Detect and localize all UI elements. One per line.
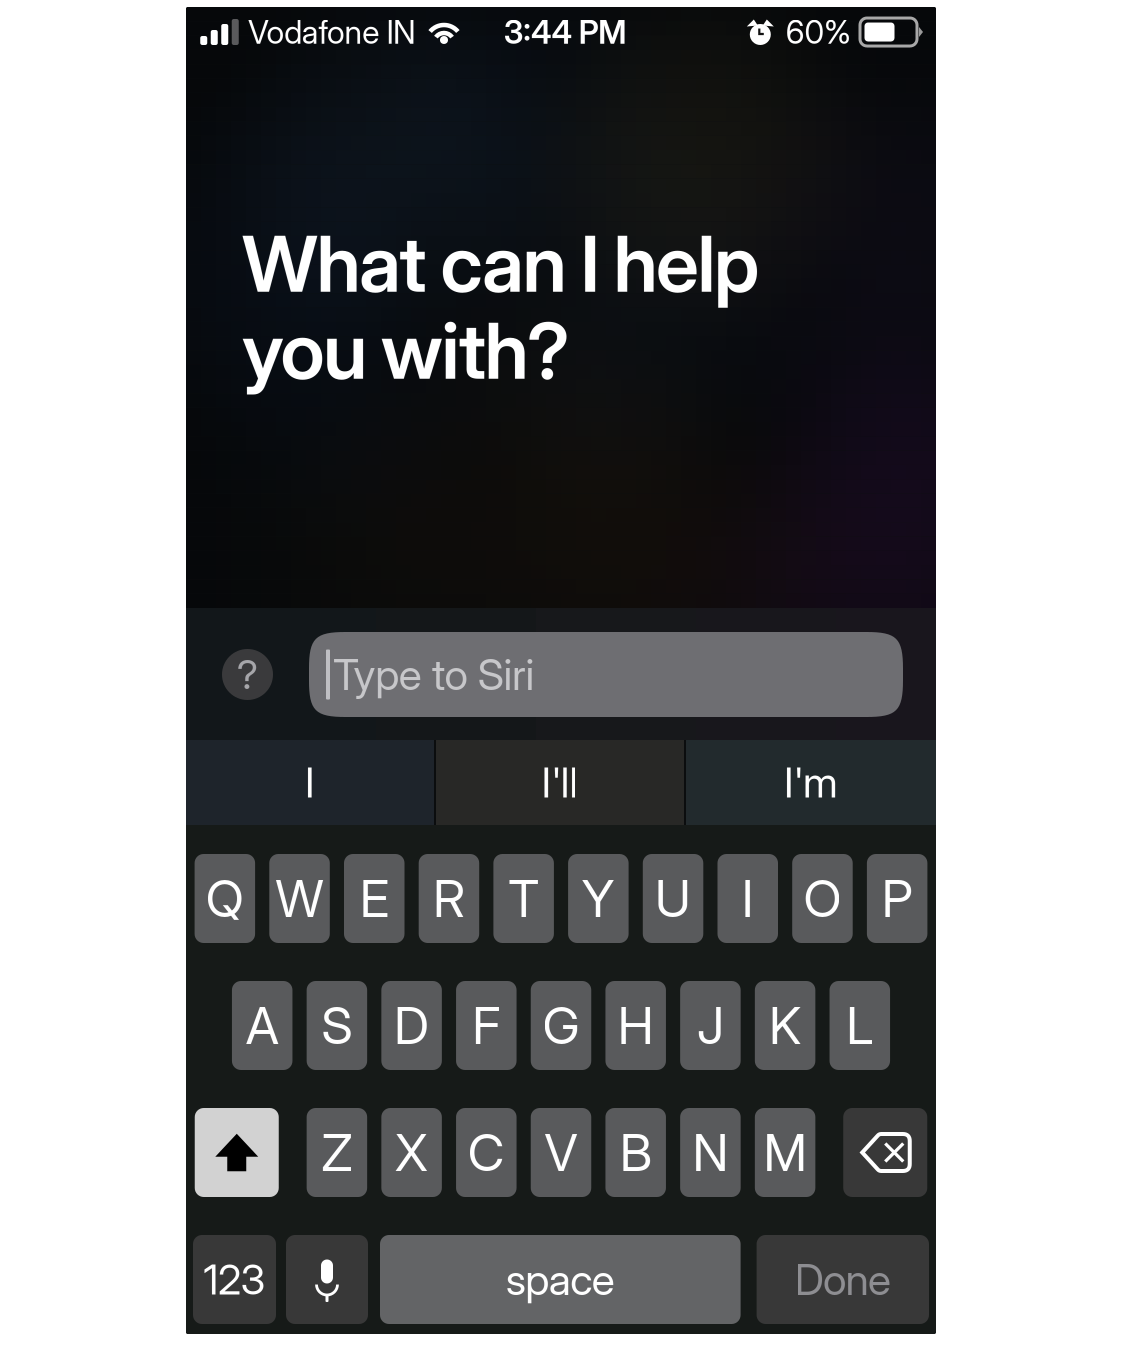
button[interactable]: D	[381, 981, 442, 1070]
button[interactable]: Shift	[195, 1108, 279, 1197]
staticText: W	[276, 868, 324, 929]
button[interactable]: I	[717, 854, 778, 943]
button[interactable]: Q	[195, 854, 255, 943]
button[interactable]: Delete	[843, 1108, 927, 1197]
staticText: I	[305, 757, 315, 807]
staticText: A	[246, 995, 279, 1056]
staticText: I	[742, 868, 754, 929]
staticText: V	[544, 1122, 577, 1183]
staticText: 60%	[786, 13, 851, 51]
staticText: F	[472, 995, 500, 1056]
button[interactable]: V	[531, 1108, 591, 1197]
button[interactable]: I'm	[686, 740, 936, 825]
button[interactable]: K	[755, 981, 815, 1070]
button[interactable]: P	[867, 854, 927, 943]
staticText: I'll	[542, 757, 578, 807]
staticText: M	[764, 1122, 807, 1183]
staticText: 123	[203, 1254, 265, 1304]
button[interactable]: 123	[193, 1235, 276, 1324]
staticText: Type to Siri	[333, 649, 535, 700]
button[interactable]: B	[605, 1108, 666, 1197]
button[interactable]: F	[456, 981, 517, 1070]
button[interactable]: I'll	[436, 740, 684, 825]
staticText: P	[882, 868, 913, 929]
staticText: K	[769, 995, 801, 1056]
button[interactable]: L	[829, 981, 890, 1070]
staticText: T	[508, 868, 539, 929]
staticText: ?	[237, 650, 258, 699]
staticText: N	[692, 1122, 728, 1183]
staticText: J	[697, 995, 724, 1056]
button[interactable]: Y	[568, 854, 629, 943]
staticText: E	[360, 868, 389, 929]
button[interactable]: M	[755, 1108, 815, 1197]
button[interactable]: Siri help	[222, 649, 273, 700]
button[interactable]: X	[381, 1108, 442, 1197]
staticText: Vodafone IN	[248, 13, 416, 51]
staticText: Q	[206, 868, 244, 929]
staticText: X	[395, 1122, 428, 1183]
button[interactable]: Dictate	[286, 1235, 368, 1324]
staticText: 3:44 PM	[504, 13, 626, 51]
staticText: S	[321, 995, 352, 1056]
button[interactable]: Z	[307, 1108, 367, 1197]
staticText: O	[803, 868, 841, 929]
button[interactable]: Type to Siri	[309, 632, 903, 717]
button[interactable]: E	[344, 854, 404, 943]
staticText: you with?	[242, 304, 570, 397]
button[interactable]: I	[186, 740, 434, 825]
staticText: L	[846, 995, 873, 1056]
staticText: G	[542, 995, 579, 1056]
staticText: space	[506, 1254, 615, 1305]
button[interactable]: C	[456, 1108, 516, 1197]
staticText: What can I help	[242, 217, 759, 310]
button[interactable]: W	[269, 854, 330, 943]
button[interactable]: S	[307, 981, 367, 1070]
button[interactable]: R	[419, 854, 479, 943]
staticText: H	[618, 995, 654, 1056]
button[interactable]: J	[680, 981, 741, 1070]
button[interactable]: A	[232, 981, 292, 1070]
button[interactable]: T	[493, 854, 554, 943]
button[interactable]: N	[680, 1108, 741, 1197]
button[interactable]: G	[531, 981, 591, 1070]
staticText: Done	[795, 1254, 891, 1305]
button[interactable]: O	[792, 854, 853, 943]
button[interactable]: space	[380, 1235, 741, 1324]
staticText: R	[433, 868, 465, 929]
staticText: Z	[321, 1122, 352, 1183]
button[interactable]: Done	[757, 1235, 929, 1324]
staticText: U	[655, 868, 691, 929]
button[interactable]: U	[643, 854, 703, 943]
staticText: I'm	[784, 757, 838, 807]
staticText: Y	[582, 868, 615, 929]
staticText: C	[468, 1122, 505, 1183]
staticText: D	[394, 995, 429, 1056]
button[interactable]: H	[605, 981, 666, 1070]
staticText: B	[620, 1122, 652, 1183]
